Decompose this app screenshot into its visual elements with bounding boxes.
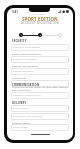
button[interactable]: Registration step (38, 33, 42, 37)
staticText: Date of birth (12, 76, 27, 79)
button[interactable]: Apartment, suite (optional) (11, 113, 69, 120)
staticText: 9:41 (12, 10, 18, 14)
staticText: COMMUNICATION (12, 83, 40, 87)
button[interactable]: Select country (11, 124, 69, 131)
staticText: L U X U R Y (33, 13, 47, 16)
button[interactable]: Enter your email address (11, 44, 69, 51)
button[interactable]: Re-enter password (11, 68, 69, 75)
staticText: Enter your email address (13, 46, 67, 49)
staticText: Select country (13, 126, 65, 129)
button[interactable]: Registration step (58, 33, 62, 37)
button[interactable]: Preferred contact method (11, 92, 69, 99)
staticText: Choose how we may contact you about new … (12, 86, 69, 92)
button[interactable]: Minimum 8 characters (11, 56, 69, 63)
staticText: ACCOUNT REGISTRATION (21, 21, 60, 25)
staticText: Preferred contact method (13, 94, 67, 97)
button[interactable]: Street address (11, 105, 69, 112)
staticText: Create a secure password (12, 52, 41, 55)
staticText: Re-enter password (13, 70, 65, 73)
button[interactable]: Registration step (19, 33, 23, 37)
staticText: Confirm your password (12, 64, 39, 67)
staticText: DD / MM / YYYY (13, 82, 67, 85)
staticText: SPORT EDITION (22, 16, 58, 22)
staticText: Country / region (12, 121, 31, 124)
button[interactable]: DD / MM / YYYY (11, 80, 69, 87)
staticText: SECURITY (12, 39, 27, 43)
staticText: Minimum 8 characters (13, 58, 67, 61)
staticText: DELIVERY (12, 101, 27, 105)
staticText: Street address (13, 107, 67, 110)
staticText: Apartment, suite (optional) (13, 115, 67, 118)
